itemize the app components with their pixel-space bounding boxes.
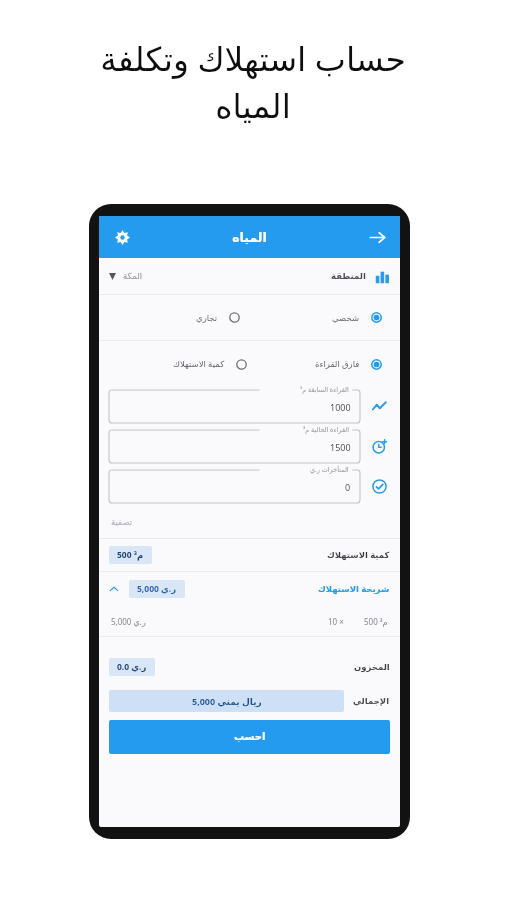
button[interactable]: احسب bbox=[109, 720, 390, 754]
staticText: شريحة الاستهلاك bbox=[318, 583, 390, 595]
staticText: 5,000 ريال يمني bbox=[192, 695, 262, 707]
button[interactable]: 5,000 ر.ي bbox=[99, 572, 400, 606]
staticText: تصفية bbox=[111, 517, 133, 527]
staticText: المتأخرات ر.ي bbox=[310, 465, 349, 474]
staticText: 5,000 ر.ي bbox=[137, 583, 177, 595]
staticText: شخصي bbox=[332, 313, 360, 323]
button[interactable]: 500 م³ bbox=[99, 539, 400, 571]
staticText: 500 م³ bbox=[364, 616, 388, 627]
staticText: احسب bbox=[234, 731, 266, 743]
staticText: القراءة السابقة م³ bbox=[300, 385, 349, 394]
button[interactable]: Refresh bbox=[369, 476, 390, 497]
staticText: المياه bbox=[232, 230, 267, 245]
button[interactable]: History bbox=[369, 436, 390, 457]
button[interactable]: Settings bbox=[107, 222, 137, 252]
staticText: 10 × bbox=[328, 616, 344, 627]
button[interactable]: Chart bbox=[369, 396, 390, 417]
staticText: المكة bbox=[123, 271, 143, 281]
staticText: الإجمالي bbox=[353, 696, 390, 706]
staticText: المنطقة bbox=[331, 271, 366, 281]
staticText: القراءة الحالية م³ bbox=[303, 425, 349, 434]
staticText: 0 bbox=[345, 481, 351, 493]
button[interactable]: كمية الاستهلاك bbox=[169, 354, 251, 374]
staticText: 1000 bbox=[330, 401, 351, 413]
staticText: حساب استهلاك وتكلفة bbox=[100, 36, 406, 81]
button[interactable]: المكة bbox=[99, 258, 400, 294]
button[interactable]: فارق القراءة bbox=[311, 354, 386, 374]
staticText: كمية الاستهلاك bbox=[173, 358, 225, 370]
button[interactable]: 0.0 ر.ي bbox=[99, 651, 400, 683]
staticText: المياه bbox=[215, 87, 291, 125]
staticText: 0.0 ر.ي bbox=[117, 661, 147, 673]
staticText: 1500 bbox=[330, 441, 351, 453]
staticText: 500 م³ bbox=[117, 549, 144, 561]
staticText: تجاري bbox=[196, 313, 218, 323]
staticText: كمية الاستهلاك bbox=[327, 549, 390, 561]
staticText: فارق القراءة bbox=[315, 358, 360, 370]
staticText: المخزون bbox=[354, 662, 390, 672]
button[interactable]: شخصي bbox=[328, 308, 386, 327]
button[interactable]: تجاري bbox=[192, 308, 244, 327]
staticText: 5,000 ر.ي bbox=[111, 616, 146, 627]
button[interactable]: Next bbox=[362, 222, 392, 252]
